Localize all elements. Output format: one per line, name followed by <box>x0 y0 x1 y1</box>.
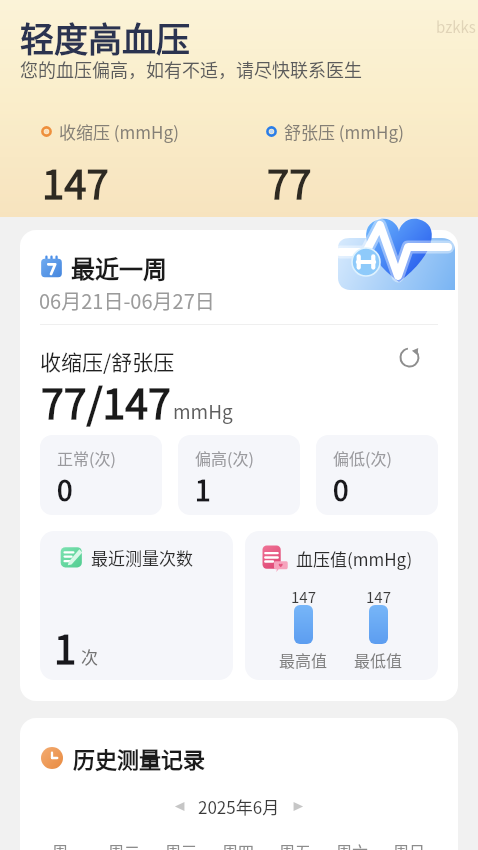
staticText: 周一 <box>52 839 85 850</box>
staticText: 最近测量次数 <box>91 545 193 570</box>
staticText: 次 <box>81 644 98 669</box>
staticText: 1 <box>54 618 77 676</box>
staticText: 最低值 <box>354 648 403 671</box>
staticText: 77 <box>267 153 312 211</box>
button[interactable]: 上个月 <box>169 796 190 817</box>
button[interactable]: 下个月 <box>288 796 309 817</box>
staticText: 06月21日-06月27日 <box>39 286 215 315</box>
staticText: mmHg <box>173 397 233 425</box>
button[interactable]: 正常(次) <box>40 435 162 515</box>
staticText: 147 <box>42 153 109 211</box>
staticText: 周五 <box>279 839 312 850</box>
staticText: 您的血压偏高，如有不适，请尽快联系医生 <box>20 56 362 82</box>
staticText: bzkks <box>436 16 476 38</box>
staticText: 正常(次) <box>57 446 116 469</box>
staticText: 偏低(次) <box>333 446 392 469</box>
staticText: 周二 <box>108 839 141 850</box>
staticText: 0 <box>57 469 73 510</box>
staticText: 收缩压/舒张压 <box>40 346 175 376</box>
staticText: 147 <box>366 586 391 608</box>
button[interactable]: 刷新 <box>395 343 423 371</box>
button[interactable]: 偏高(次) <box>178 435 300 515</box>
button[interactable]: 血压值(mmHg) <box>245 531 438 680</box>
staticText: 1 <box>195 469 211 510</box>
staticText: 历史测量记录 <box>73 742 206 774</box>
staticText: 147 <box>291 586 316 608</box>
staticText: 最近一周 <box>71 250 167 285</box>
staticText: 血压值(mmHg) <box>296 546 413 571</box>
staticText: 周三 <box>165 839 198 850</box>
staticText: 轻度高血压 <box>20 13 190 62</box>
staticText: 周六 <box>336 839 369 850</box>
staticText: 周日 <box>393 839 426 850</box>
button[interactable]: 最近测量次数 <box>40 531 233 680</box>
staticText: 最高值 <box>279 648 328 671</box>
button[interactable]: 偏低(次) <box>316 435 438 515</box>
staticText: 77/147 <box>41 371 171 430</box>
staticText: 偏高(次) <box>195 446 254 469</box>
staticText: 舒张压 (mmHg) <box>284 119 405 144</box>
staticText: 收缩压 (mmHg) <box>59 119 180 144</box>
staticText: 0 <box>333 469 349 510</box>
staticText: 周四 <box>222 839 255 850</box>
staticText: 2025年6月 <box>198 794 280 819</box>
